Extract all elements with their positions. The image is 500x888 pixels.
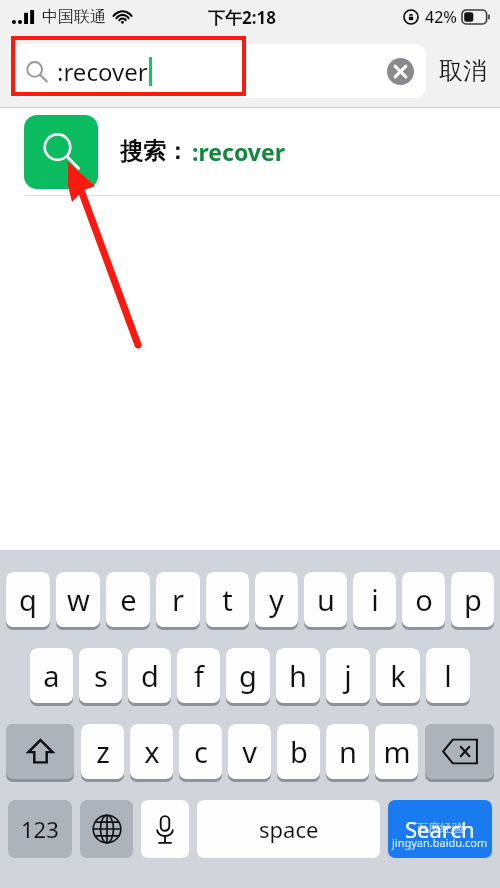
button[interactable]: l [426,648,470,703]
staticText: i [371,580,379,619]
staticText: v [242,732,257,771]
staticText: h [289,656,307,695]
button[interactable]: space [197,800,380,858]
staticText: t [222,580,233,619]
button[interactable]: p [451,572,494,627]
button[interactable]: d [128,648,171,703]
button[interactable]: f [177,648,220,703]
staticText: 42% [425,6,457,28]
button[interactable]: g [226,648,270,703]
staticText: r [172,580,184,619]
staticText: x [144,732,160,771]
button[interactable]: 123 [8,800,72,858]
staticText: u [317,580,335,619]
button[interactable]: h [276,648,320,703]
staticText: c [194,732,208,771]
button[interactable]: n [326,724,369,779]
button[interactable]: Clear text [387,58,414,85]
button[interactable]: q [6,572,50,627]
button[interactable]: i [353,572,396,627]
button[interactable]: Delete [425,724,494,779]
staticText: k [390,656,406,695]
staticText: space [259,814,319,844]
staticText: a [43,656,60,695]
button[interactable]: Search [388,800,492,858]
staticText: 取消 [439,56,487,86]
staticText: :recover [57,55,148,88]
staticText: s [94,656,108,695]
staticText: o [415,580,433,619]
staticText: Search [405,814,475,844]
button[interactable]: k [376,648,420,703]
staticText: 百度经验 [416,820,464,835]
staticText: 搜索： [120,137,189,166]
staticText: w [67,580,90,619]
button[interactable]: v [228,724,271,779]
staticText: g [239,656,257,695]
staticText: q [19,580,37,619]
button[interactable]: r [156,572,200,627]
staticText: n [339,732,357,771]
button[interactable]: 搜索： [0,108,500,195]
staticText: j [344,656,352,695]
button[interactable]: w [56,572,100,627]
staticText: 下午2:18 [208,6,276,29]
staticText: :recover [192,136,285,167]
button[interactable]: o [402,572,445,627]
button[interactable]: c [179,724,222,779]
button[interactable]: e [106,572,150,627]
button[interactable]: m [375,724,418,779]
button[interactable]: x [130,724,173,779]
button[interactable]: Switch keyboard [80,800,133,858]
staticText: m [383,732,411,771]
staticText: f [194,656,204,695]
staticText: jingyan.baidu.com [392,835,488,850]
staticText: p [464,580,482,619]
staticText: 中国联通 [42,7,106,27]
staticText: l [444,656,452,695]
button[interactable]: Shift [6,724,74,779]
button[interactable]: y [255,572,298,627]
button[interactable]: a [30,648,73,703]
button[interactable]: z [81,724,124,779]
button[interactable]: Voice input [141,800,189,858]
staticText: z [96,732,110,771]
staticText: e [120,580,137,619]
button[interactable]: 取消 [439,56,487,86]
staticText: d [141,656,159,695]
button[interactable]: t [206,572,249,627]
button[interactable]: :recover [14,44,426,98]
staticText: y [269,580,284,619]
staticText: b [290,732,308,771]
staticText: 123 [21,814,59,844]
button[interactable]: s [79,648,122,703]
button[interactable]: b [277,724,320,779]
button[interactable]: j [326,648,370,703]
button[interactable]: u [304,572,347,627]
